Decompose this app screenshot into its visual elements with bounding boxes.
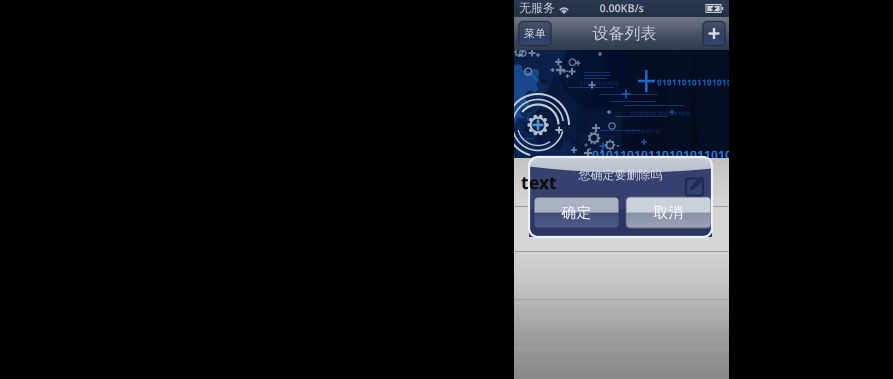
button[interactable]: text [514,159,729,206]
staticText: 0.00KB/s [599,1,643,15]
button[interactable]: 菜单 [519,21,551,45]
staticText: 取消 [653,203,683,221]
staticText: text [521,171,557,194]
staticText: 01011010110101011010 [630,110,690,117]
staticText: 您确定要删除吗 [578,168,662,182]
staticText: 确定 [561,203,591,221]
staticText: 010110101101 [626,128,662,135]
staticText: 0101101011010101 [657,77,737,88]
staticText: 无服务 [519,1,555,15]
button[interactable]: 添加 [703,21,725,45]
staticText: 菜单 [524,27,546,40]
staticText: 0101101011010 [580,80,619,87]
staticText: 0101101011010101101010110101011010 [592,147,802,179]
button[interactable]: 确定 [534,197,619,228]
button[interactable]: 取消 [626,197,711,228]
staticText: 设备列表 [592,24,656,43]
